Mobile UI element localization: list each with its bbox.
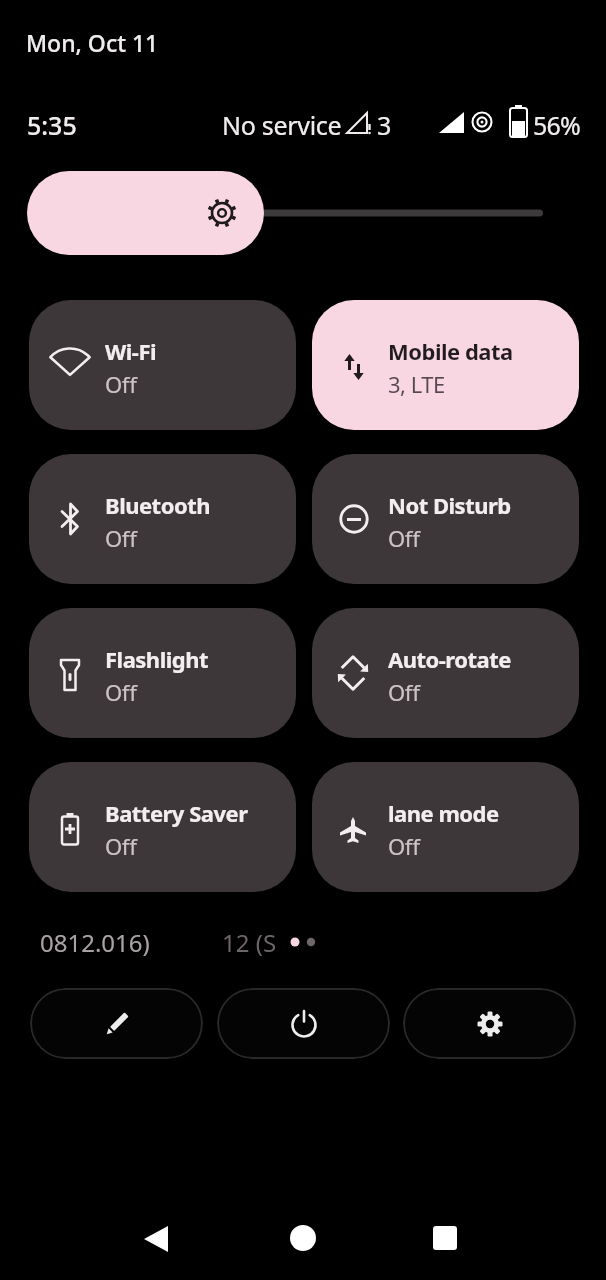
staticText: Mon, Oct 11 <box>26 27 159 58</box>
staticText: Wi-Fi <box>105 336 291 366</box>
staticText: 0812.016) <box>40 926 150 959</box>
button[interactable]: Flashlight <box>29 608 296 738</box>
staticText: Off <box>105 523 137 553</box>
button[interactable]: Wi-Fi <box>29 300 296 430</box>
staticText: Off <box>388 831 420 861</box>
staticText: Flashlight <box>105 644 291 674</box>
button[interactable]: Bluetooth <box>29 454 296 584</box>
staticText: 5:35 <box>27 108 77 142</box>
staticText: Off <box>105 831 137 861</box>
button[interactable] <box>144 1226 168 1252</box>
staticText: 12 (S <box>222 926 277 959</box>
staticText: Off <box>388 523 420 553</box>
button[interactable] <box>27 171 264 255</box>
staticText: Battery Saver <box>105 798 291 828</box>
button[interactable] <box>403 988 576 1059</box>
staticText: Bluetooth <box>105 490 291 520</box>
button[interactable] <box>30 988 203 1059</box>
staticText: Not Disturb <box>388 490 574 520</box>
button[interactable] <box>433 1226 457 1250</box>
staticText: lane mode <box>388 798 574 828</box>
staticText: Mobile data <box>388 336 574 366</box>
button[interactable]: lane mode <box>312 762 579 892</box>
staticText: No service <box>222 108 342 142</box>
button[interactable]: Mobile data <box>312 300 579 430</box>
staticText: 3, LTE <box>388 369 445 399</box>
button[interactable]: Not Disturb <box>312 454 579 584</box>
staticText: 56% <box>533 108 580 142</box>
button[interactable] <box>217 988 390 1059</box>
staticText: Off <box>105 369 137 399</box>
staticText: Auto-rotate <box>388 644 574 674</box>
staticText: 3 <box>377 108 392 142</box>
staticText: Off <box>105 677 137 707</box>
button[interactable]: Auto-rotate <box>312 608 579 738</box>
button[interactable]: Battery Saver <box>29 762 296 892</box>
staticText: Off <box>388 677 420 707</box>
button[interactable] <box>290 1225 316 1251</box>
